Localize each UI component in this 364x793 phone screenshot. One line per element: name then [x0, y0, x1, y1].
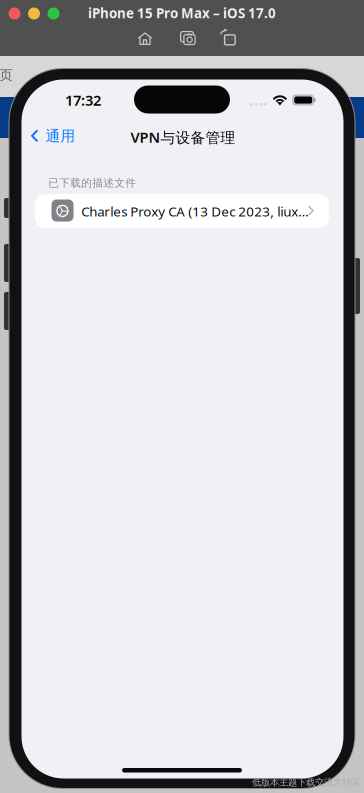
button[interactable]: Screenshot — [179, 29, 199, 48]
button[interactable]: Charles Proxy CA (13 Dec 2023, liux… — [35, 194, 329, 228]
staticText: Charles Proxy CA (13 Dec 2023, liux… — [81, 202, 309, 220]
staticText: 通用 — [45, 127, 75, 145]
staticText: iPhone 15 Pro Max – iOS 17.0 — [88, 4, 276, 22]
button[interactable]: 通用 — [27, 124, 85, 148]
staticText: VPN与设备管理 — [130, 127, 235, 147]
staticText: 已下载的描述文件 — [48, 176, 136, 189]
staticText: 17:32 — [65, 90, 101, 110]
staticText: 页 — [0, 67, 12, 83]
staticText: 低版本主题下载交流大社区 — [252, 777, 360, 788]
button[interactable]: Rotate device — [219, 28, 239, 49]
button[interactable]: Home — [135, 29, 155, 48]
